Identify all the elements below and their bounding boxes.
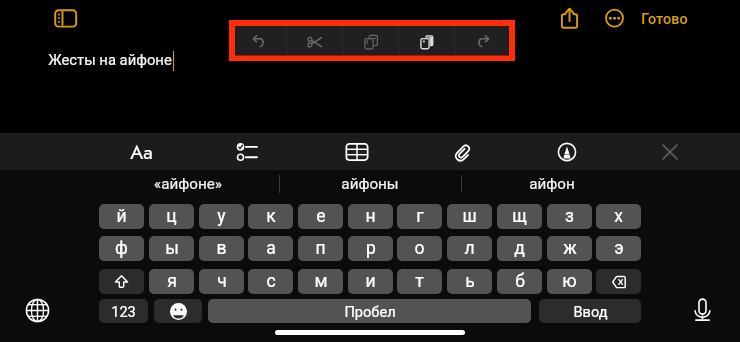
button[interactable]: ы [149, 236, 194, 261]
button[interactable]: Undo [231, 26, 287, 55]
staticText: м [314, 271, 328, 292]
button[interactable]: а [248, 236, 293, 261]
button[interactable]: More options [598, 2, 631, 35]
staticText: ш [462, 206, 477, 227]
button[interactable]: Close keyboard [651, 133, 689, 170]
staticText: о [414, 238, 425, 259]
button[interactable]: айфон [461, 170, 643, 198]
staticText: щ [512, 206, 527, 227]
staticText: Aa [130, 138, 153, 166]
staticText: ы [165, 238, 179, 259]
staticText: а [266, 238, 276, 259]
button[interactable]: Checklist [229, 133, 267, 170]
staticText: х [614, 206, 623, 227]
staticText: с [266, 271, 276, 292]
button[interactable]: ю [547, 269, 592, 294]
button[interactable]: э [596, 236, 641, 261]
staticText: ю [562, 271, 577, 292]
button[interactable]: Emoji [154, 299, 202, 323]
staticText: 123 [111, 303, 136, 320]
button[interactable]: и [348, 269, 393, 294]
button[interactable]: л [447, 236, 492, 261]
staticText: б [515, 271, 525, 292]
button[interactable]: Shift [99, 269, 144, 294]
button[interactable]: Paste [399, 26, 455, 55]
button[interactable]: Dictation [687, 295, 718, 326]
button[interactable]: Cut [287, 26, 343, 55]
staticText: п [315, 238, 326, 259]
button[interactable]: у [199, 204, 244, 229]
button[interactable]: Switch keyboard [22, 295, 53, 326]
button[interactable]: ц [149, 204, 194, 229]
button[interactable]: о [397, 236, 442, 261]
staticText: ь [465, 271, 475, 292]
button[interactable]: в [199, 236, 244, 261]
button[interactable]: з [547, 204, 592, 229]
button[interactable]: Copy [343, 26, 399, 55]
staticText: ж [563, 238, 577, 259]
button[interactable]: ш [447, 204, 492, 229]
staticText: и [365, 271, 376, 292]
button[interactable]: г [397, 204, 442, 229]
button[interactable]: к [248, 204, 293, 229]
staticText: т [415, 271, 424, 292]
staticText: н [365, 206, 376, 227]
staticText: я [167, 271, 177, 292]
button[interactable]: щ [497, 204, 542, 229]
button[interactable]: 123 [99, 299, 148, 323]
staticText: д [514, 238, 525, 259]
button[interactable]: т [397, 269, 442, 294]
staticText: з [565, 206, 574, 227]
button[interactable]: Backspace [596, 269, 641, 294]
button[interactable]: н [348, 204, 393, 229]
button[interactable]: айфоны [279, 170, 461, 198]
button[interactable]: я [149, 269, 194, 294]
button[interactable]: ж [547, 236, 592, 261]
button[interactable]: м [298, 269, 343, 294]
staticText: в [216, 238, 227, 259]
staticText: к [266, 206, 276, 227]
staticText: э [614, 238, 624, 259]
staticText: й [116, 206, 127, 227]
staticText: у [217, 206, 226, 227]
button[interactable]: ф [99, 236, 144, 261]
button[interactable]: Add attachment [443, 133, 481, 170]
staticText: Жесты на айфоне [48, 51, 172, 68]
staticText: ч [217, 271, 227, 292]
button[interactable]: Пробел [208, 299, 531, 323]
button[interactable]: ь [447, 269, 492, 294]
button[interactable]: Show note list [49, 4, 83, 34]
staticText: р [366, 238, 376, 259]
button[interactable]: р [348, 236, 393, 261]
staticText: «айфоне» [154, 175, 222, 193]
button[interactable]: с [248, 269, 293, 294]
staticText: ф [115, 238, 128, 259]
staticText: Готово [641, 11, 688, 28]
button[interactable]: Redo [455, 26, 511, 55]
staticText: е [316, 206, 326, 227]
staticText: айфоны [341, 175, 399, 193]
staticText: л [464, 238, 475, 259]
button[interactable]: е [298, 204, 343, 229]
button[interactable]: б [497, 269, 542, 294]
staticText: ц [166, 206, 177, 227]
button[interactable]: й [99, 204, 144, 229]
button[interactable]: «айфоне» [96, 170, 279, 198]
staticText: Пробел [344, 303, 396, 320]
button[interactable]: Share [553, 2, 586, 35]
staticText: айфон [529, 175, 575, 193]
staticText: Ввод [573, 303, 608, 320]
button[interactable]: х [596, 204, 641, 229]
button[interactable]: ч [199, 269, 244, 294]
button[interactable]: Ввод [539, 299, 641, 323]
button[interactable]: Table [338, 133, 376, 170]
button[interactable]: Text formatting [122, 133, 160, 170]
button[interactable]: п [298, 236, 343, 261]
button[interactable]: д [497, 236, 542, 261]
staticText: г [416, 206, 424, 227]
button[interactable]: Markup [548, 133, 586, 170]
button[interactable]: Готово [635, 8, 694, 31]
